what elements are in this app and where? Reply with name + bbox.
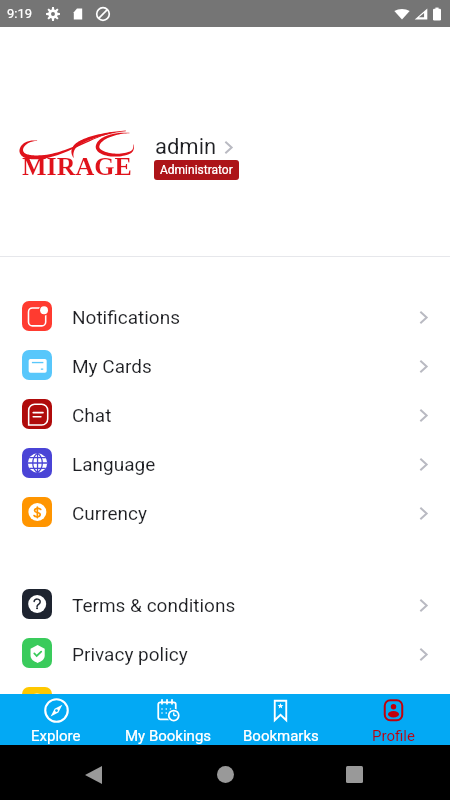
- button[interactable]: Recents: [334, 754, 375, 795]
- button[interactable]: Currency: [0, 488, 450, 537]
- staticText: Terms & conditions: [72, 594, 236, 616]
- button[interactable]: Profile: [337, 694, 450, 745]
- button[interactable]: Privacy policy: [0, 629, 450, 678]
- staticText: Administrator: [160, 163, 233, 177]
- button[interactable]: Home: [205, 754, 246, 795]
- staticText: Currency: [72, 502, 148, 524]
- staticText: Language: [72, 453, 156, 475]
- staticText: Privacy policy: [72, 643, 188, 665]
- staticText: MIRAGE: [22, 152, 132, 181]
- staticText: My Bookings: [125, 727, 212, 745]
- staticText: My Cards: [72, 355, 152, 377]
- button[interactable]: My Cards: [0, 341, 450, 390]
- button[interactable]: Chat: [0, 390, 450, 439]
- button[interactable]: Notifications: [0, 292, 450, 341]
- staticText: Profile: [372, 727, 415, 745]
- button[interactable]: Terms & conditions: [0, 580, 450, 629]
- button[interactable]: Language: [0, 439, 450, 488]
- staticText: admin: [155, 134, 217, 160]
- staticText: Notifications: [72, 306, 181, 328]
- staticText: About: [72, 692, 123, 714]
- button[interactable]: Explore: [0, 694, 112, 745]
- button[interactable]: MIRAGE: [0, 123, 450, 185]
- button[interactable]: My Bookings: [112, 694, 224, 745]
- staticText: 9:19: [7, 6, 33, 21]
- button[interactable]: About: [0, 678, 450, 727]
- staticText: Chat: [72, 404, 112, 426]
- button[interactable]: Back: [73, 754, 114, 795]
- staticText: Explore: [31, 727, 81, 745]
- button[interactable]: Bookmarks: [224, 694, 337, 745]
- staticText: Bookmarks: [243, 727, 319, 745]
